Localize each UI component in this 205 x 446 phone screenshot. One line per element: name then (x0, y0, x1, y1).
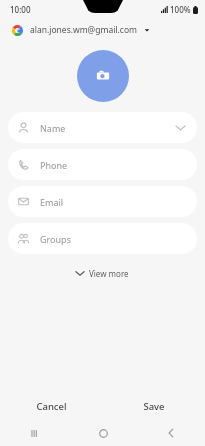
button[interactable]: Recents (0, 420, 69, 446)
button[interactable]: View more (68, 264, 137, 283)
staticText: Name (40, 122, 66, 134)
button[interactable]: Name (8, 112, 197, 143)
button[interactable]: Groups (8, 223, 197, 254)
button[interactable]: Save (102, 392, 205, 420)
staticText: Groups (40, 233, 71, 245)
button[interactable]: Phone (8, 149, 197, 180)
staticText: alan.jones.wm@gmail.com (30, 24, 138, 36)
button[interactable]: alan.jones.wm@gmail.com (0, 18, 205, 42)
button[interactable]: Home (69, 420, 137, 446)
staticText: 10:00 (10, 4, 31, 15)
button[interactable]: Back (137, 420, 205, 446)
button[interactable]: Add photo (77, 50, 129, 102)
button[interactable]: Email (8, 186, 197, 217)
staticText: Phone (40, 159, 68, 171)
staticText: Save (143, 400, 165, 413)
staticText: Cancel (36, 400, 67, 413)
staticText: Email (40, 196, 64, 208)
staticText: 100% (170, 4, 191, 15)
button[interactable]: Cancel (0, 392, 102, 420)
staticText: View more (89, 268, 129, 279)
